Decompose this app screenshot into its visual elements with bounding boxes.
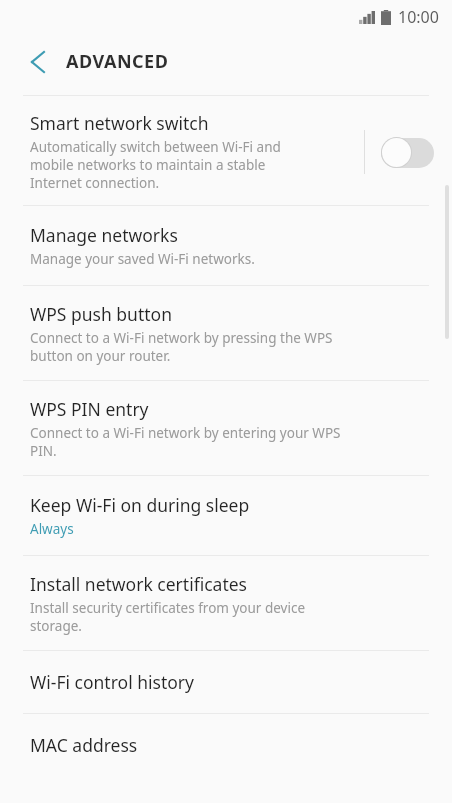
button[interactable]: Smart network switch: [381, 137, 434, 168]
staticText: WPS push button: [30, 302, 172, 326]
button[interactable]: WPS PIN entry: [0, 381, 452, 475]
staticText: Connect to a Wi-Fi network by entering y…: [30, 424, 341, 460]
staticText: Automatically switch between Wi-Fi and m…: [30, 138, 281, 192]
staticText: Connect to a Wi-Fi network by pressing t…: [30, 329, 333, 365]
button[interactable]: MAC address: [0, 714, 452, 776]
staticText: Manage your saved Wi-Fi networks.: [30, 250, 255, 268]
staticText: WPS PIN entry: [30, 397, 149, 421]
button[interactable]: Back: [20, 44, 56, 80]
staticText: ADVANCED: [66, 49, 169, 74]
staticText: MAC address: [30, 733, 138, 757]
staticText: Keep Wi-Fi on during sleep: [30, 493, 250, 517]
staticText: 10:00: [398, 6, 439, 28]
staticText: Manage networks: [30, 223, 178, 247]
button[interactable]: Manage networks: [0, 206, 452, 285]
button[interactable]: Smart network switch: [0, 96, 452, 205]
staticText: Smart network switch: [30, 111, 209, 135]
button[interactable]: Wi-Fi control history: [0, 651, 452, 713]
button[interactable]: Install network certificates: [0, 556, 452, 650]
staticText: Install security certificates from your …: [30, 599, 306, 635]
button[interactable]: WPS push button: [0, 286, 452, 380]
button[interactable]: Keep Wi-Fi on during sleep: [0, 476, 452, 555]
staticText: Always: [30, 520, 74, 538]
staticText: Install network certificates: [30, 572, 247, 596]
staticText: Wi-Fi control history: [30, 670, 194, 694]
